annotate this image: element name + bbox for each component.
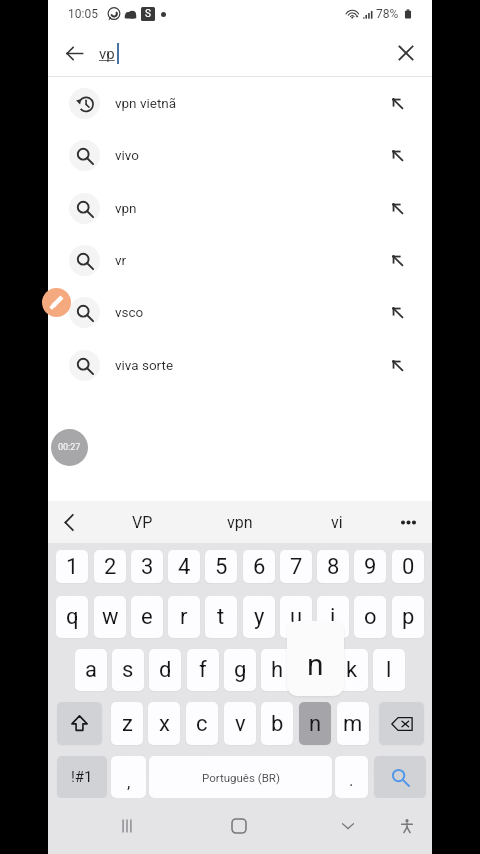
button[interactable]: Backspace xyxy=(379,702,424,745)
button[interactable]: z xyxy=(111,702,143,745)
button[interactable]: Recording timer xyxy=(51,429,88,466)
button[interactable]: m xyxy=(337,702,369,745)
button[interactable]: v xyxy=(224,702,256,745)
staticText: c xyxy=(196,711,208,737)
button[interactable]: s xyxy=(112,649,144,691)
button[interactable]: VP xyxy=(94,501,191,543)
button[interactable]: w xyxy=(94,596,126,638)
staticText: 9 xyxy=(364,554,377,580)
button[interactable]: . xyxy=(335,756,368,798)
button[interactable]: i xyxy=(317,596,349,638)
button[interactable]: y xyxy=(243,596,275,638)
button[interactable]: Português (BR) xyxy=(149,756,332,798)
button[interactable]: c xyxy=(186,702,218,745)
button[interactable]: vpn xyxy=(48,182,432,234)
staticText: 2 xyxy=(104,554,117,580)
button[interactable]: Recents xyxy=(112,811,142,841)
button[interactable]: 0 xyxy=(392,550,424,583)
staticText: vp xyxy=(99,45,115,63)
button[interactable]: Back xyxy=(57,36,91,70)
button[interactable]: 7 xyxy=(280,550,312,583)
staticText: t xyxy=(217,604,225,630)
staticText: 1 xyxy=(66,554,79,580)
button[interactable]: e xyxy=(131,596,163,638)
button[interactable]: vpn xyxy=(191,501,288,543)
staticText: 10:05 xyxy=(68,7,98,21)
button[interactable]: 2 xyxy=(94,550,126,583)
button[interactable]: j xyxy=(298,649,330,691)
button[interactable]: Search xyxy=(374,756,426,798)
staticText: 00:27 xyxy=(58,442,81,453)
button[interactable]: 1 xyxy=(56,550,88,583)
staticText: w xyxy=(102,604,119,630)
button[interactable]: vivo xyxy=(48,129,432,181)
staticText: 6 xyxy=(253,554,266,580)
staticText: p xyxy=(402,604,415,630)
button[interactable]: a xyxy=(75,649,107,691)
staticText: Português (BR) xyxy=(202,771,280,784)
staticText: vi xyxy=(331,513,343,532)
button[interactable]: Accessibility xyxy=(392,811,422,841)
button[interactable]: Hide keyboard xyxy=(333,811,363,841)
staticText: f xyxy=(199,657,207,683)
staticText: S xyxy=(145,8,151,20)
staticText: i xyxy=(330,604,336,630)
button[interactable]: b xyxy=(261,702,293,745)
staticText: l xyxy=(386,657,392,683)
button[interactable]: Home xyxy=(224,811,254,841)
button[interactable]: 5 xyxy=(205,550,237,583)
button[interactable]: o xyxy=(354,596,386,638)
button[interactable]: , xyxy=(111,756,146,798)
button[interactable]: Clear search xyxy=(389,36,423,70)
staticText: j xyxy=(311,657,317,683)
button[interactable]: viva sorte xyxy=(48,339,432,391)
staticText: vivo xyxy=(115,147,139,163)
staticText: 4 xyxy=(178,554,191,580)
button[interactable]: d xyxy=(149,649,181,691)
staticText: a xyxy=(85,657,97,683)
button[interactable]: Shift xyxy=(57,702,102,745)
staticText: r xyxy=(180,604,188,630)
button[interactable]: r xyxy=(168,596,200,638)
staticText: vpn xyxy=(115,200,137,216)
staticText: g xyxy=(234,657,247,683)
staticText: , xyxy=(127,772,131,792)
button[interactable]: t xyxy=(205,596,237,638)
button[interactable]: h xyxy=(261,649,293,691)
button[interactable]: 6 xyxy=(243,550,275,583)
staticText: vr xyxy=(115,252,127,268)
button[interactable]: k xyxy=(336,649,368,691)
button[interactable]: vpn vietnã xyxy=(48,77,432,129)
button[interactable]: q xyxy=(56,596,88,638)
button[interactable]: p xyxy=(392,596,424,638)
button[interactable]: Draw xyxy=(42,288,71,317)
button[interactable]: vi xyxy=(288,501,385,543)
staticText: viva sorte xyxy=(115,357,174,373)
staticText: n xyxy=(307,647,324,682)
button[interactable]: !#1 xyxy=(57,756,107,798)
button[interactable]: vsco xyxy=(48,286,432,338)
button[interactable]: vr xyxy=(48,234,432,286)
staticText: 78% xyxy=(376,7,399,21)
staticText: VP xyxy=(132,513,153,532)
button[interactable]: 8 xyxy=(317,550,349,583)
button[interactable]: 3 xyxy=(131,550,163,583)
staticText: vsco xyxy=(115,304,144,320)
button[interactable]: l xyxy=(373,649,405,691)
staticText: x xyxy=(159,711,170,737)
button[interactable]: f xyxy=(187,649,219,691)
staticText: d xyxy=(159,657,172,683)
button[interactable]: 4 xyxy=(168,550,200,583)
button[interactable]: n xyxy=(299,702,331,745)
staticText: 8 xyxy=(327,554,340,580)
staticText: u xyxy=(290,604,303,630)
staticText: o xyxy=(364,604,377,630)
button[interactable]: Previous suggestions xyxy=(56,509,82,535)
button[interactable]: x xyxy=(148,702,180,745)
button[interactable]: u xyxy=(280,596,312,638)
button[interactable]: 9 xyxy=(354,550,386,583)
staticText: vpn vietnã xyxy=(115,95,177,111)
button[interactable]: g xyxy=(224,649,256,691)
staticText: n xyxy=(309,711,322,737)
button[interactable]: More options xyxy=(394,508,422,536)
